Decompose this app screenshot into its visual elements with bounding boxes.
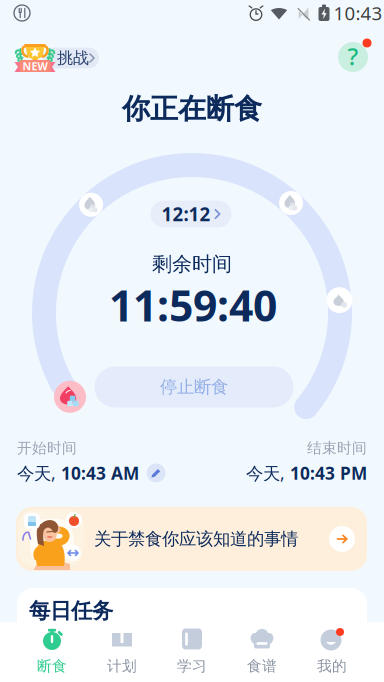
button[interactable]: 12:12 [150,200,232,227]
button[interactable]: 编辑开始时间 [145,462,167,484]
staticText: 10:43 PM [285,461,367,484]
staticText: 今天, [246,461,285,484]
button[interactable]: NEW [0,38,100,78]
staticText: 剩余时间 [152,252,232,276]
staticText: 我的 [317,657,347,675]
staticText: 你正在断食 [122,92,262,126]
staticText: NEW [22,59,47,73]
button[interactable]: 关于禁食你应该知道的事情 [16,507,367,571]
staticText: 断食 [37,657,67,675]
staticText: 10:43 AM [56,461,139,484]
staticText: 停止断食 [160,376,228,398]
staticText: 学习 [177,657,207,675]
button[interactable]: 计划 [87,628,157,674]
button[interactable]: 学习 [157,628,227,674]
staticText: 食谱 [247,657,277,675]
staticText: 12:12 [161,202,210,226]
staticText: 计划 [107,657,137,675]
staticText: ? [347,40,358,72]
button[interactable]: 食谱 [227,628,297,674]
staticText: 关于禁食你应该知道的事情 [94,528,298,550]
staticText: 挑战 [57,48,89,68]
staticText: 11:59:40 [109,277,277,333]
button[interactable]: 帮助 [334,38,372,76]
staticText: 开始时间 [17,439,77,457]
button[interactable]: 我的 [297,628,367,674]
staticText: 10:43 [333,1,382,25]
staticText: 每日任务 [29,598,113,624]
button[interactable]: 停止断食 [94,366,293,407]
button[interactable]: 断食 [17,628,87,674]
staticText: 今天, [17,461,56,484]
staticText: 结束时间 [307,439,367,457]
